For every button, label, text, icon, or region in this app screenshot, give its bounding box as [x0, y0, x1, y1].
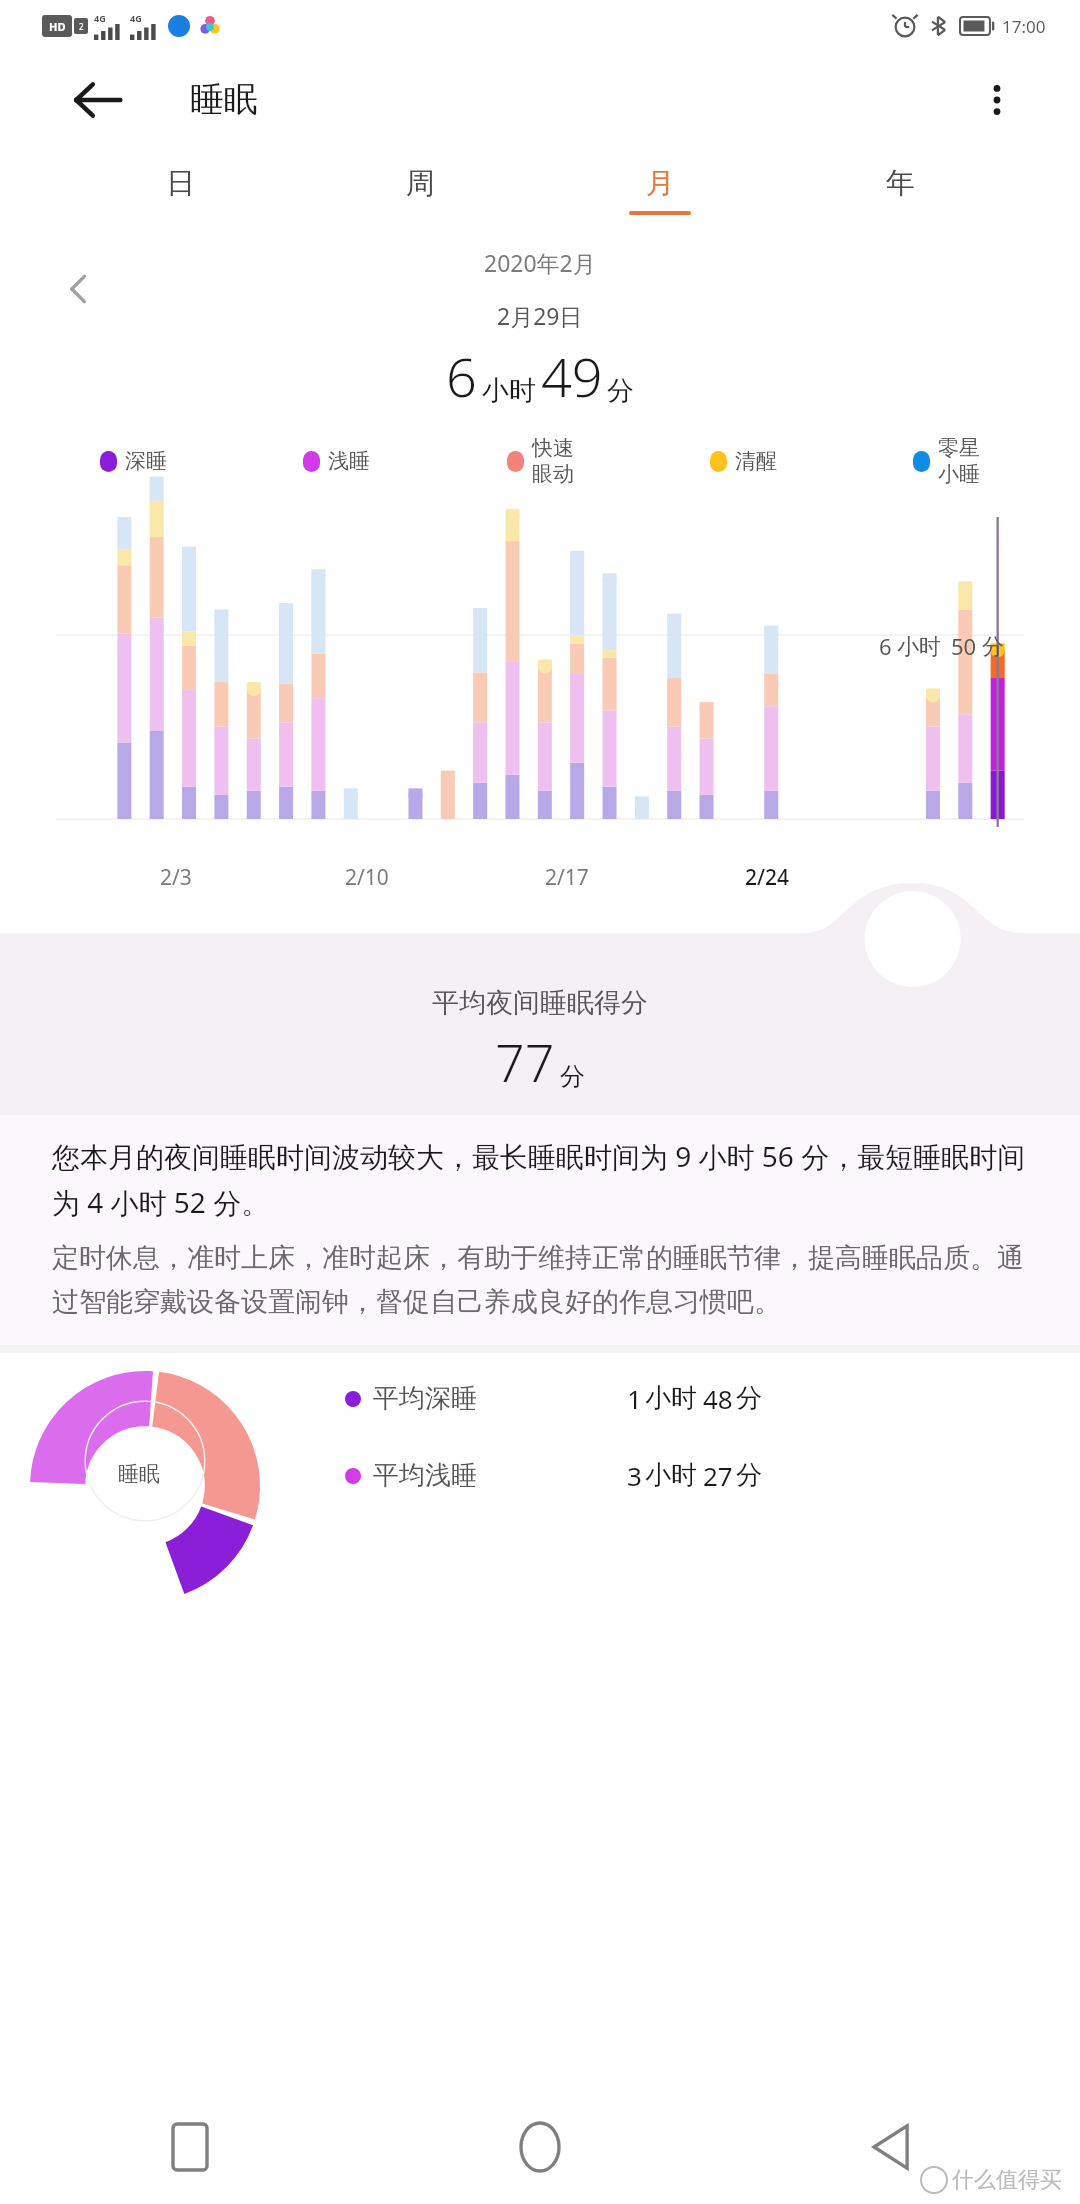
staticText: 2	[79, 21, 84, 32]
staticText: 平均浅睡	[373, 1459, 477, 1492]
staticText: 日	[166, 165, 195, 202]
button[interactable]: 更多选项	[962, 65, 1032, 135]
staticText: 定时休息，准时上床，准时起床，有助于维持正常的睡眠节律，提高睡眠品质。通过智能穿…	[52, 1241, 1036, 1319]
staticText: 2/3	[160, 863, 192, 892]
staticText: 月	[646, 165, 675, 202]
staticText: 48	[703, 1381, 733, 1416]
staticText: 睡眠	[190, 78, 258, 121]
button[interactable]: 平均浅睡	[345, 1458, 1080, 1493]
button[interactable]: 日	[60, 147, 300, 233]
button[interactable]: 返回	[62, 65, 132, 135]
staticText: 分	[982, 633, 1004, 661]
staticText: 零星	[938, 435, 980, 461]
staticText: 年	[886, 165, 915, 202]
staticText: 49	[541, 339, 603, 413]
staticText: 6	[879, 631, 892, 661]
staticText: 周	[406, 165, 435, 202]
staticText: 2月29日	[497, 300, 583, 331]
button[interactable]: 月	[540, 147, 780, 233]
staticText: 小睡	[938, 461, 980, 487]
staticText: 小时	[645, 1382, 697, 1415]
staticText: HD	[49, 19, 66, 34]
button[interactable]: 周	[300, 147, 540, 233]
button[interactable]: 上一月	[48, 258, 110, 320]
button[interactable]: 查看详情	[865, 891, 961, 987]
staticText: 2/17	[545, 863, 589, 892]
staticText: 平均深睡	[373, 1382, 477, 1415]
staticText: 17:00	[1002, 15, 1046, 38]
staticText: 4G	[130, 12, 142, 24]
staticText: 快速	[532, 435, 574, 461]
staticText: 1	[627, 1381, 642, 1416]
button[interactable]: 最近任务	[150, 2107, 230, 2187]
staticText: 清醒	[735, 448, 777, 474]
staticText: 小时	[482, 374, 536, 408]
button[interactable]: 返回	[850, 2107, 930, 2187]
staticText: 眼动	[532, 461, 574, 487]
staticText: 浅睡	[328, 448, 370, 474]
button[interactable]: 平均深睡	[345, 1381, 1080, 1416]
staticText: 2/24	[745, 863, 790, 892]
staticText: 您本月的夜间睡眠时间波动较大，最长睡眠时间为 9 小时 56 分，最短睡眠时间为…	[52, 1137, 1036, 1221]
staticText: 分	[736, 1382, 762, 1415]
staticText: 分	[607, 374, 634, 408]
staticText: 小时	[645, 1459, 697, 1492]
button[interactable]: 年	[780, 147, 1020, 233]
staticText: 什么值得买	[952, 2166, 1062, 2194]
staticText: 平均夜间睡眠得分	[432, 986, 648, 1020]
staticText: 睡眠	[118, 1461, 160, 1487]
staticText: 77	[495, 1026, 555, 1097]
button[interactable]: 主页	[500, 2107, 580, 2187]
staticText: 4G	[94, 12, 106, 24]
staticText: 2020年2月	[484, 247, 596, 278]
staticText: 50	[951, 631, 977, 661]
staticText: 3	[627, 1458, 642, 1493]
staticText: 深睡	[125, 448, 167, 474]
staticText: 分	[560, 1061, 585, 1092]
staticText: 小时	[897, 633, 941, 661]
staticText: 分	[736, 1459, 762, 1492]
staticText: 27	[703, 1458, 733, 1493]
staticText: 6	[446, 339, 477, 413]
staticText: 2/10	[345, 863, 389, 892]
